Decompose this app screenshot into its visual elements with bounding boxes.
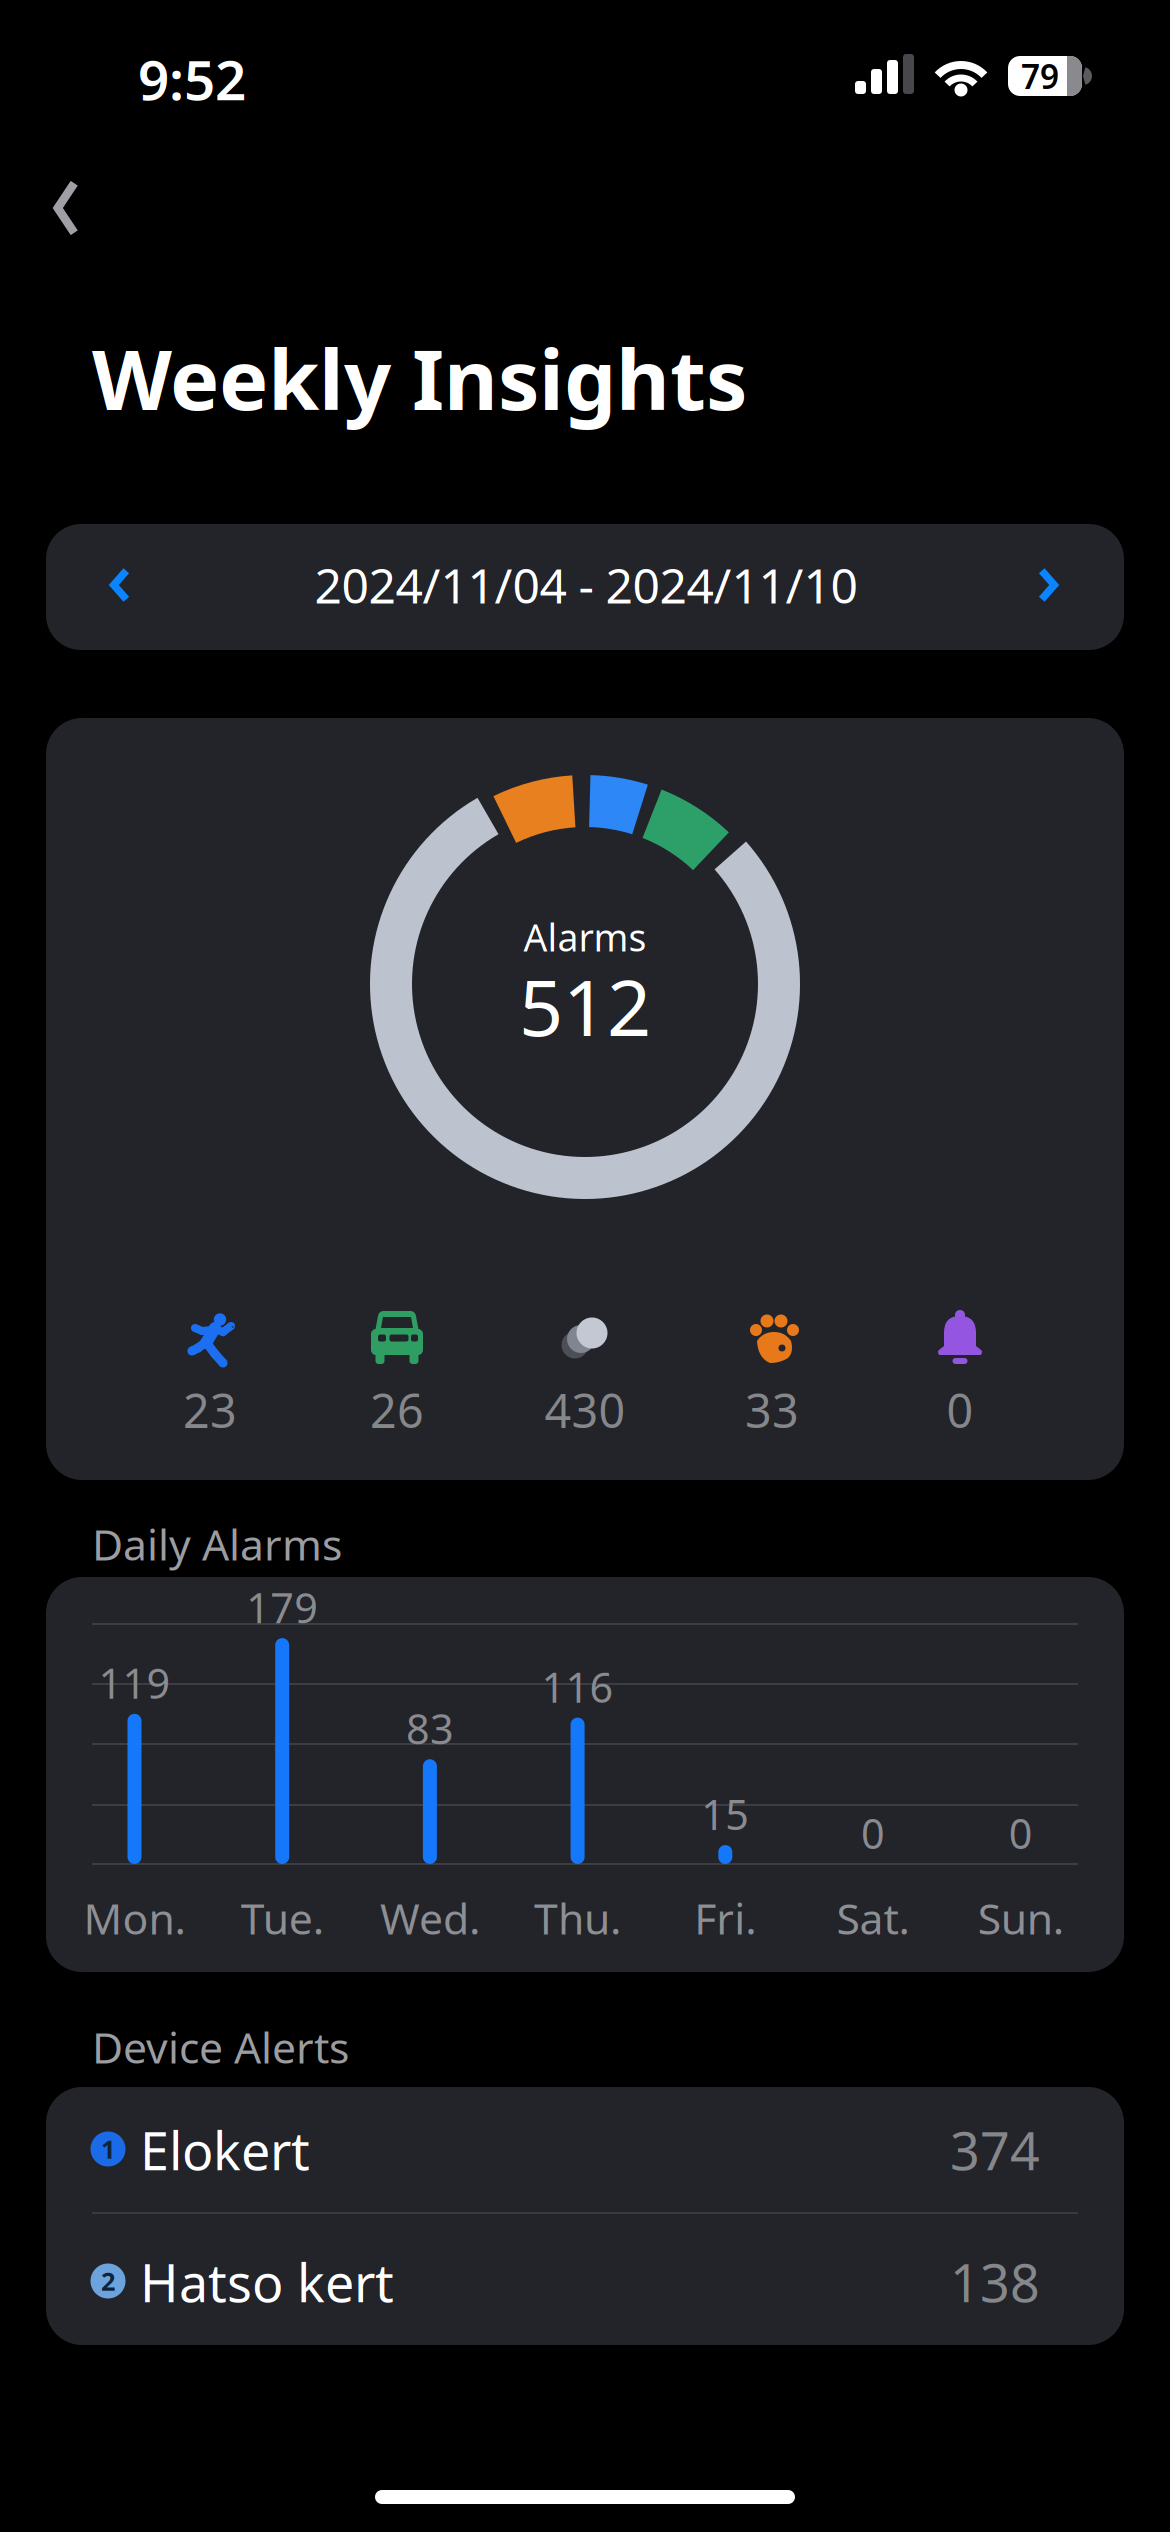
staticText: 79: [1021, 54, 1059, 98]
staticText: 2: [101, 2264, 115, 2298]
staticText: 26: [370, 1379, 424, 1441]
staticText: 119: [98, 1655, 170, 1710]
staticText: 15: [701, 1787, 749, 1841]
staticText: Weekly Insights: [92, 323, 747, 433]
staticText: Sat.: [836, 1890, 909, 1946]
staticText: Elokert: [140, 2115, 310, 2185]
staticText: 1: [101, 2132, 115, 2166]
staticText: 9:52: [138, 43, 246, 115]
staticText: 138: [950, 2247, 1040, 2317]
staticText: 0: [1009, 1806, 1033, 1860]
button[interactable]: Previous week: [86, 543, 154, 627]
staticText: 23: [183, 1379, 237, 1441]
staticText: Wed.: [380, 1890, 480, 1946]
staticText: Daily Alarms: [92, 1516, 342, 1572]
button[interactable]: Back: [33, 159, 98, 257]
staticText: 374: [950, 2115, 1040, 2185]
staticText: 33: [745, 1379, 799, 1441]
staticText: 430: [544, 1379, 625, 1441]
staticText: Tue.: [241, 1890, 324, 1946]
staticText: 179: [246, 1580, 318, 1635]
staticText: Hatso kert: [140, 2247, 394, 2317]
staticText: Sun.: [978, 1890, 1064, 1946]
staticText: 116: [542, 1659, 614, 1714]
staticText: Mon.: [83, 1890, 185, 1946]
button[interactable]: Next week: [1014, 543, 1082, 627]
staticText: Fri.: [694, 1890, 756, 1946]
staticText: Alarms: [523, 912, 646, 962]
staticText: 512: [519, 955, 651, 1057]
staticText: 2024/11/04 - 2024/11/10: [314, 553, 857, 617]
staticText: 83: [406, 1701, 454, 1756]
staticText: 0: [861, 1806, 885, 1860]
staticText: Device Alerts: [92, 2019, 349, 2075]
staticText: Thu.: [534, 1890, 621, 1946]
staticText: 0: [946, 1379, 973, 1441]
